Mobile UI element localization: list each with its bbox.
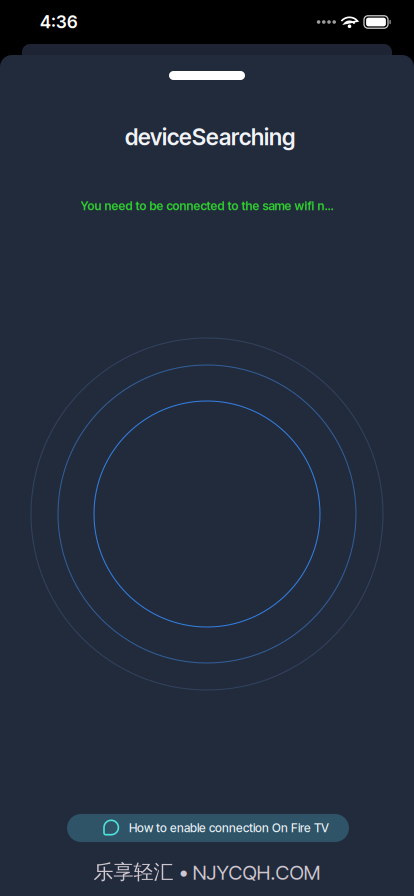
staticText: You need to be connected to the same wif…: [80, 199, 333, 213]
staticText: 乐享轻汇 • NJYCQH.COM: [93, 859, 320, 885]
button[interactable]: Dismiss sheet: [169, 71, 245, 80]
button[interactable]: How to enable connection On Fire TV: [67, 814, 349, 842]
staticText: deviceSearching: [125, 123, 295, 151]
staticText: 4:36: [40, 11, 78, 32]
staticText: How to enable connection On Fire TV: [129, 821, 329, 835]
